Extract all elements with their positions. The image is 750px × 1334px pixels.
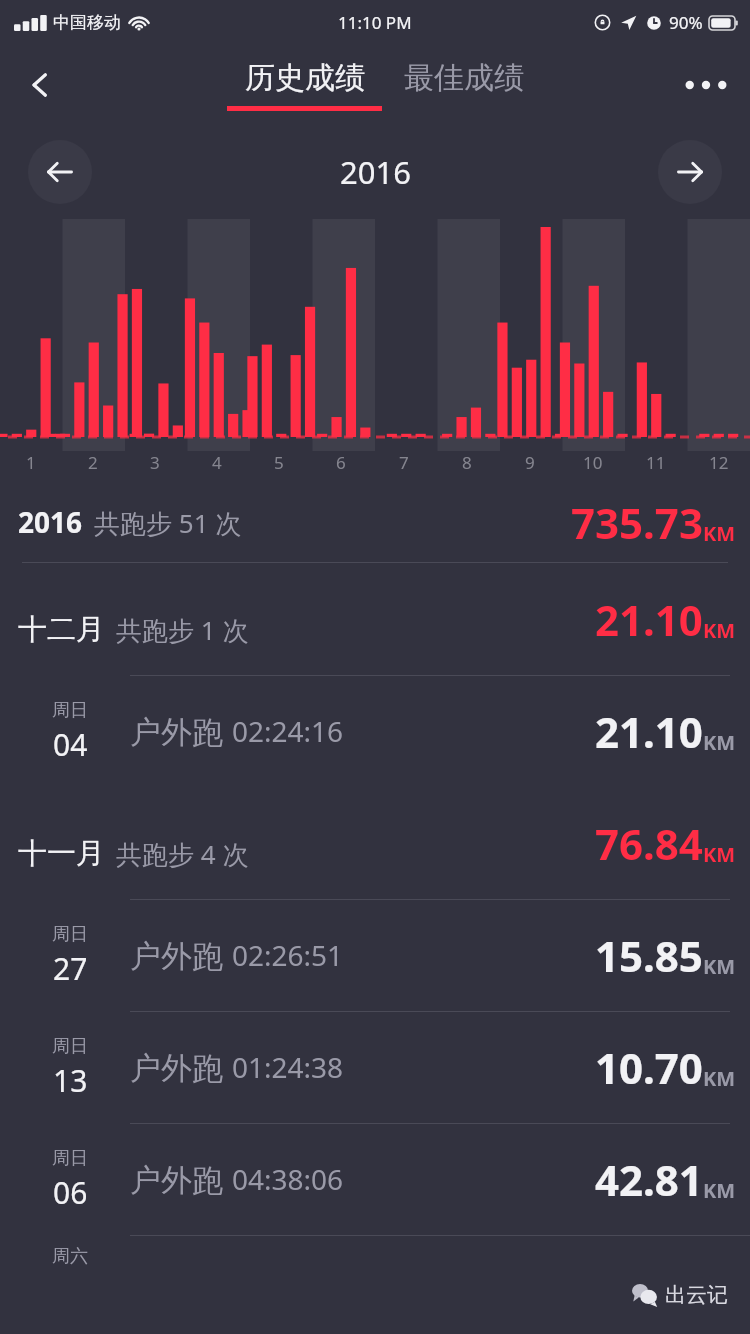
staticText: 21.10 (595, 591, 703, 648)
staticText: 11 (646, 451, 666, 474)
staticText: 共跑步 51 次 (94, 505, 242, 541)
staticText: 周日 (52, 699, 88, 722)
staticText: 历史成绩 (245, 59, 365, 97)
staticText: 中国移动 (53, 12, 121, 33)
staticText: 735.73 (571, 494, 703, 551)
button[interactable]: 历史成绩 (227, 59, 382, 111)
staticText: KM (703, 617, 736, 644)
button[interactable]: Previous year (28, 140, 92, 204)
staticText: 76.84 (595, 815, 703, 872)
staticText: 2016 (340, 151, 411, 193)
staticText: 15.85 (595, 927, 703, 984)
staticText: 6 (336, 451, 346, 474)
staticText: 最佳成绩 (404, 59, 524, 97)
staticText: 户外跑 (130, 713, 223, 752)
staticText: 04 (53, 724, 88, 765)
staticText: 9 (525, 451, 535, 474)
staticText: 12 (709, 451, 729, 474)
button[interactable]: Next year (658, 140, 722, 204)
staticText: 周日 (52, 923, 88, 946)
staticText: 4 (212, 451, 222, 474)
staticText: 共跑步 1 次 (116, 612, 249, 648)
staticText: 10 (583, 451, 603, 474)
staticText: 周六 (52, 1245, 88, 1268)
staticText: 04:38:06 (232, 1160, 344, 1198)
button[interactable]: 周日 (0, 1124, 750, 1235)
staticText: 共跑步 4 次 (116, 836, 249, 872)
staticText: KM (703, 729, 736, 756)
staticText: KM (703, 520, 736, 547)
staticText: 周日 (52, 1147, 88, 1170)
staticText: KM (703, 841, 736, 868)
staticText: 02:24:16 (232, 712, 344, 750)
staticText: 5 (274, 451, 284, 474)
button[interactable]: 十一月 (0, 787, 750, 899)
staticText: 42.81 (595, 1151, 703, 1208)
staticText: 3 (150, 451, 160, 474)
staticText: 06 (53, 1172, 88, 1213)
button[interactable]: More options (676, 55, 736, 115)
button[interactable]: 周日 (0, 1012, 750, 1123)
staticText: 13 (53, 1060, 88, 1101)
staticText: 02:26:51 (232, 936, 344, 974)
staticText: 十二月 (18, 611, 105, 648)
staticText: KM (703, 1177, 736, 1204)
staticText: 1 (26, 451, 36, 474)
button[interactable]: 周日 (0, 676, 750, 787)
staticText: 10.70 (595, 1039, 703, 1096)
staticText: 周日 (52, 1035, 88, 1058)
staticText: 2016 (18, 503, 83, 541)
staticText: 11:10 PM (338, 11, 412, 34)
staticText: 户外跑 (130, 1049, 223, 1088)
staticText: 8 (462, 451, 472, 474)
staticText: KM (703, 1065, 736, 1092)
staticText: 十一月 (18, 835, 105, 872)
staticText: 90% (669, 11, 703, 34)
button[interactable]: 最佳成绩 (404, 59, 524, 111)
staticText: 户外跑 (130, 1161, 223, 1200)
button[interactable]: Back (12, 57, 68, 113)
button[interactable]: 2016 (0, 481, 750, 563)
staticText: KM (703, 953, 736, 980)
staticText: 出云记 (665, 1282, 728, 1308)
staticText: 7 (399, 451, 409, 474)
button[interactable]: 周六 (0, 1236, 750, 1276)
staticText: 27 (53, 948, 88, 989)
staticText: 01:24:38 (232, 1048, 344, 1086)
button[interactable]: 周日 (0, 900, 750, 1011)
staticText: 户外跑 (130, 937, 223, 976)
button[interactable]: 十二月 (0, 563, 750, 675)
staticText: 2 (88, 451, 98, 474)
staticText: 21.10 (595, 703, 703, 760)
